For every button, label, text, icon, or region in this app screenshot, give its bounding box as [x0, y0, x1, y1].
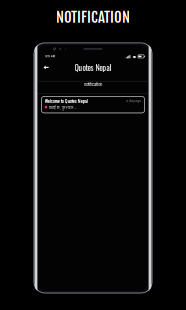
button[interactable]: Back	[40, 60, 52, 75]
staticText: notification	[84, 81, 102, 87]
staticText: a day ago	[126, 99, 141, 103]
staticText: Quotes Nepal	[74, 61, 111, 73]
staticText: बधाईं छ, पुरस्कार...	[49, 105, 77, 110]
staticText: NOTIFICATION	[56, 8, 130, 26]
button[interactable]: Welcome to Quotes Nepal	[38, 96, 148, 113]
staticText: Welcome to Quotes Nepal	[45, 99, 88, 104]
staticText: 10:51 AM	[45, 55, 55, 58]
button[interactable]: notification	[38, 81, 148, 93]
